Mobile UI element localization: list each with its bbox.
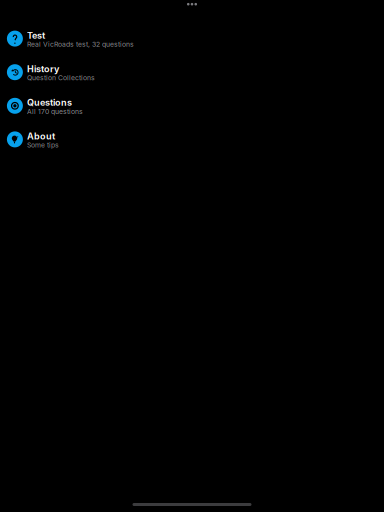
staticText: History [27,63,59,74]
staticText: Some tips [27,141,59,149]
button[interactable]: Questions [0,89,384,123]
button[interactable]: History [0,55,384,89]
staticText: Question Collections [27,74,95,82]
staticText: About [27,131,55,142]
staticText: All 170 questions [27,107,83,115]
staticText: Test [27,30,45,41]
button[interactable]: About [0,123,384,156]
button[interactable]: Test [0,22,384,55]
button[interactable]: More options [175,0,209,8]
staticText: Questions [27,97,72,108]
staticText: Real VicRoads test, 32 questions [27,40,134,48]
